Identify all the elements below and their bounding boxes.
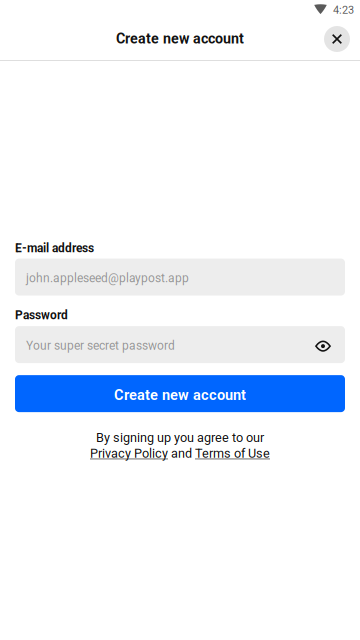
staticText: By signing up you agree to our (96, 430, 264, 445)
staticText: E-mail address (15, 241, 94, 255)
staticText: and (171, 446, 192, 461)
button[interactable]: Terms of Use (195, 446, 270, 461)
staticText: Your super secret password (26, 339, 175, 353)
staticText: 4:23 (333, 4, 354, 16)
button[interactable]: Close (324, 26, 350, 54)
staticText: Privacy Policy (90, 446, 168, 461)
button[interactable]: Show password (310, 332, 336, 358)
staticText: Create new account (116, 30, 244, 47)
staticText: Create new account (114, 387, 246, 404)
staticText: Password (15, 308, 68, 322)
staticText: Terms of Use (195, 446, 270, 461)
staticText: john.appleseed@playpost.app (26, 271, 189, 285)
button[interactable]: Create new account (15, 375, 345, 412)
button[interactable]: Privacy Policy (90, 446, 168, 461)
